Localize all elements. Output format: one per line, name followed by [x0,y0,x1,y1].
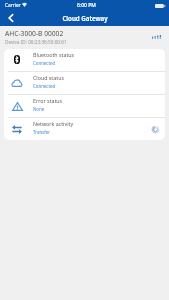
staticText: Carrier [5,2,21,9]
button[interactable]: Network activity [4,118,165,140]
staticText: Transfer [33,129,51,135]
staticText: Cloud Gateway [62,14,108,22]
staticText: Connected [33,60,56,66]
button[interactable]: Cloud status [4,72,165,94]
staticText: 6:00 PM [77,2,96,9]
button[interactable]: Back [0,12,21,26]
staticText: Connected [33,83,56,89]
button[interactable]: Bluetooth status [4,49,165,71]
button[interactable]: Error status [4,95,165,117]
staticText: Cloud status [33,74,64,81]
staticText: Device ID: 00:23:36:50:00:61 [5,39,67,45]
staticText: Error status [33,97,63,104]
staticText: None [33,106,45,112]
staticText: AHC-3000-B 00002 [5,29,64,38]
staticText: Network activity [33,120,74,127]
staticText: Bluetooth status [33,51,75,58]
